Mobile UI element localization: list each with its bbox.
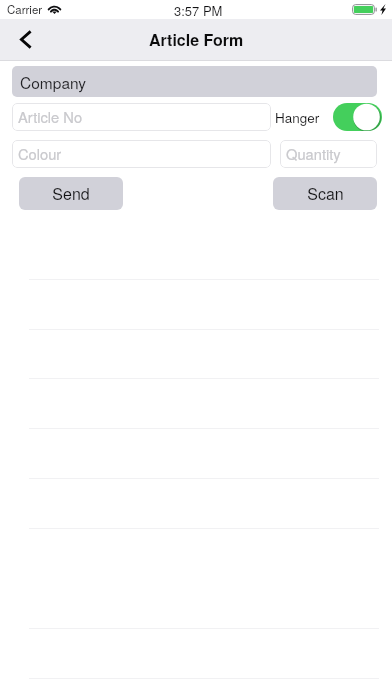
- button[interactable]: Company: [12, 66, 377, 97]
- button[interactable]: Scan: [273, 177, 377, 210]
- staticText: Quantity: [286, 143, 341, 164]
- button[interactable]: Back: [8, 21, 44, 57]
- staticText: Colour: [18, 143, 62, 164]
- staticText: Carrier: [7, 1, 43, 17]
- staticText: Hanger: [275, 108, 320, 127]
- button[interactable]: Quantity: [280, 140, 377, 168]
- button[interactable]: Colour: [12, 140, 271, 168]
- staticText: Scan: [307, 182, 344, 205]
- staticText: Send: [52, 182, 90, 205]
- staticText: Company: [20, 71, 87, 93]
- staticText: 3:57 PM: [174, 1, 223, 20]
- button[interactable]: Hanger toggle: [333, 103, 382, 131]
- button[interactable]: Send: [19, 177, 123, 210]
- button[interactable]: Article No: [12, 103, 271, 131]
- staticText: Article Form: [149, 28, 244, 51]
- staticText: Article No: [18, 106, 83, 127]
